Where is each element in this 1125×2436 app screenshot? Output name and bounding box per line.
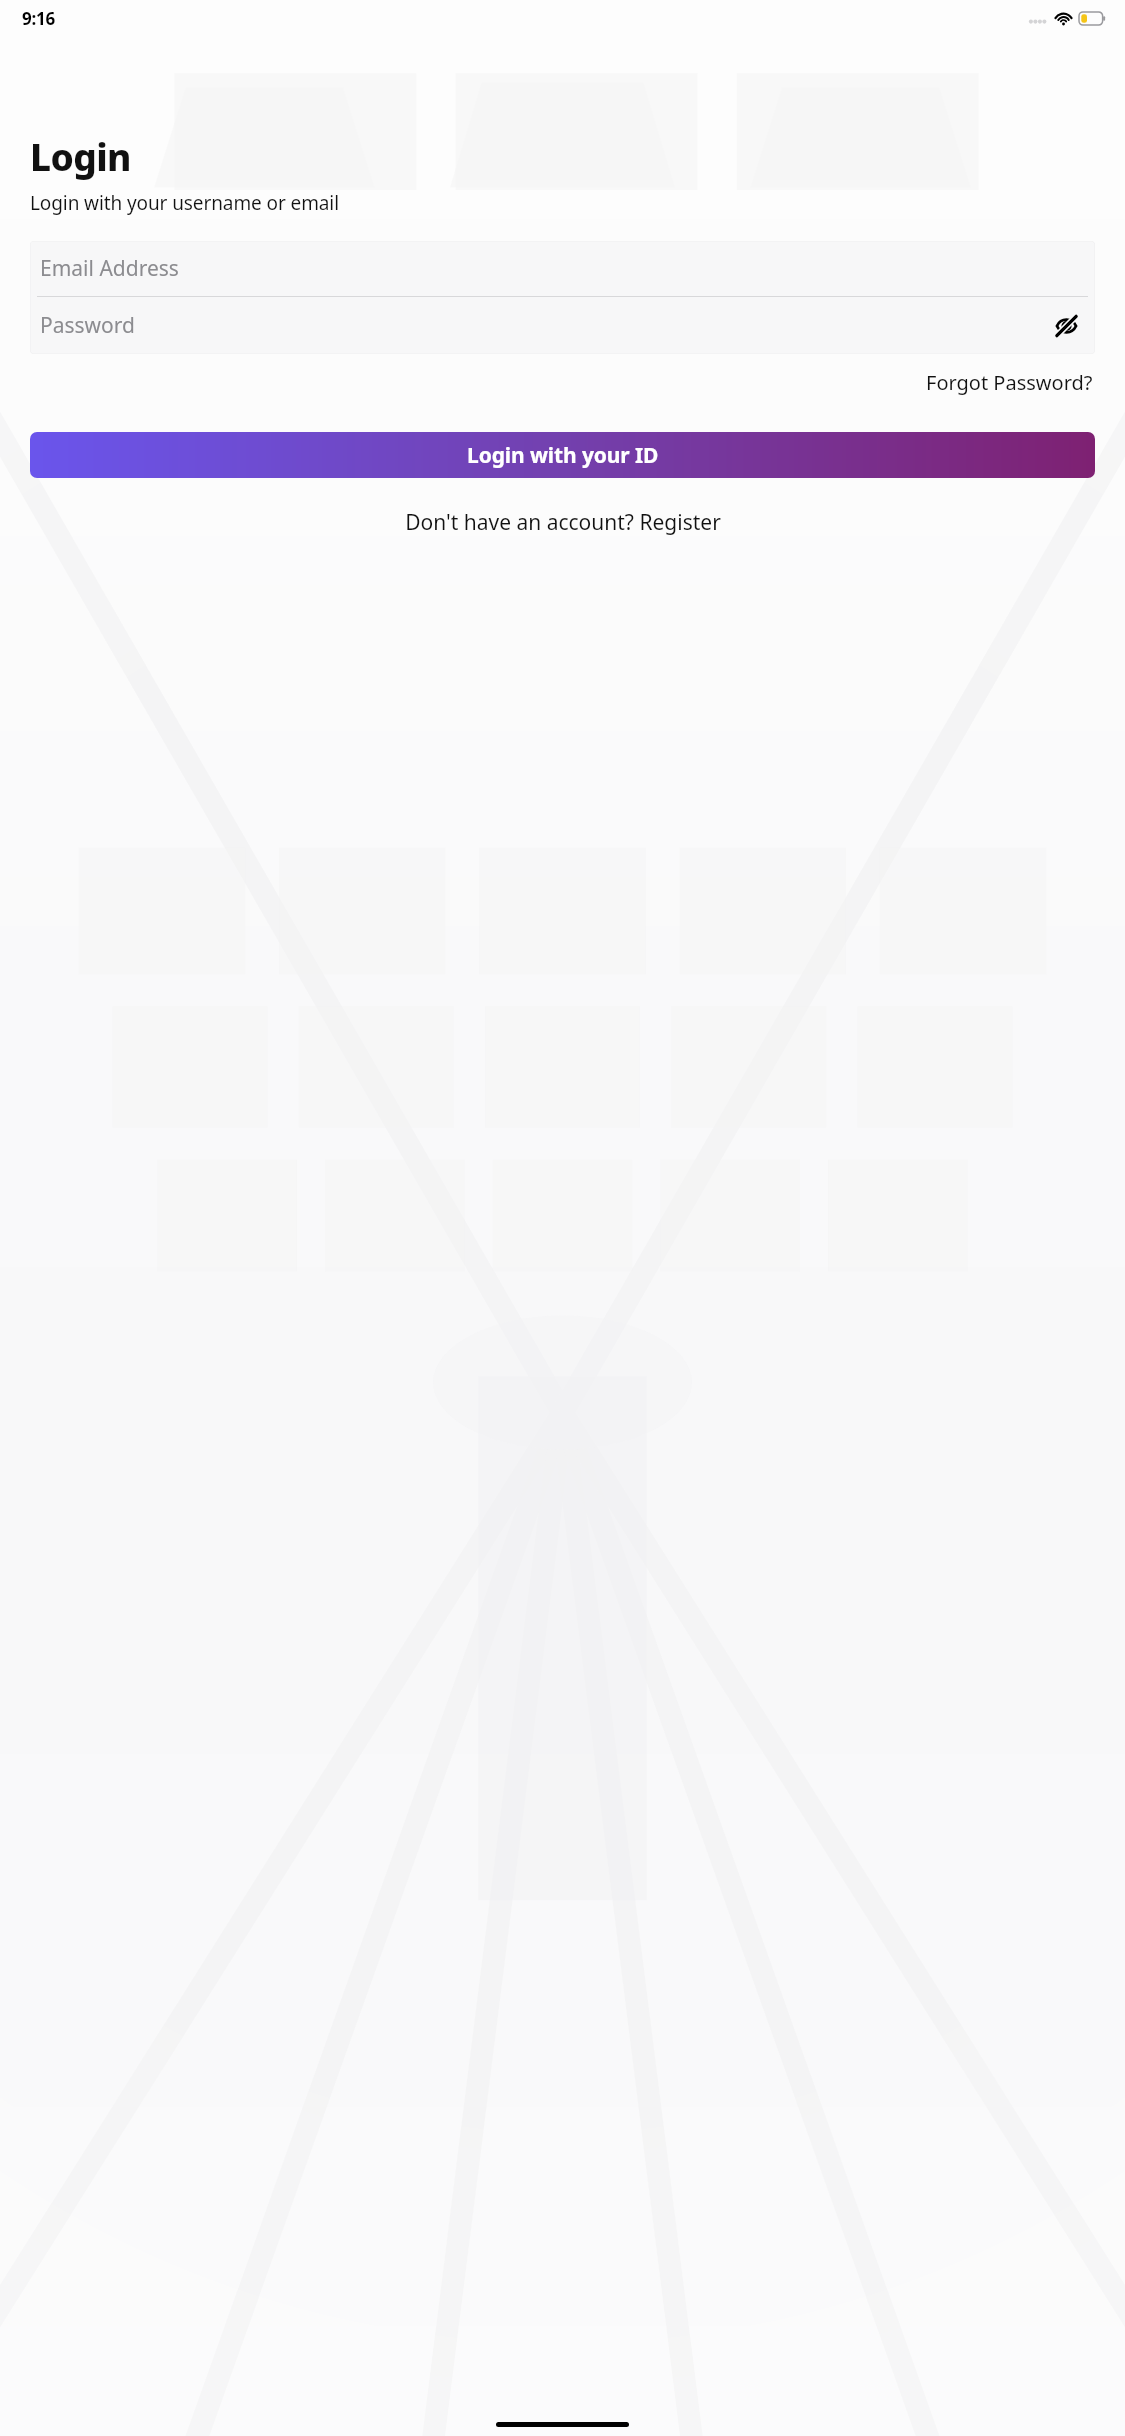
button[interactable]: Don't have an account? Register: [401, 503, 725, 542]
staticText: Password: [40, 311, 135, 340]
button[interactable]: Login with your ID: [30, 432, 1095, 478]
staticText: Login with your username or email: [30, 190, 339, 216]
staticText: Email Address: [40, 254, 179, 283]
staticText: Login with your ID: [467, 441, 659, 470]
button[interactable]: Show password: [1049, 309, 1083, 343]
staticText: Login: [30, 131, 131, 181]
button[interactable]: Password: [30, 297, 1095, 354]
button[interactable]: Forgot Password?: [924, 365, 1095, 400]
button[interactable]: Email Address: [30, 241, 1095, 296]
staticText: 9:16: [22, 7, 56, 30]
staticText: Don't have an account? Register: [405, 508, 721, 537]
staticText: Forgot Password?: [926, 369, 1093, 396]
